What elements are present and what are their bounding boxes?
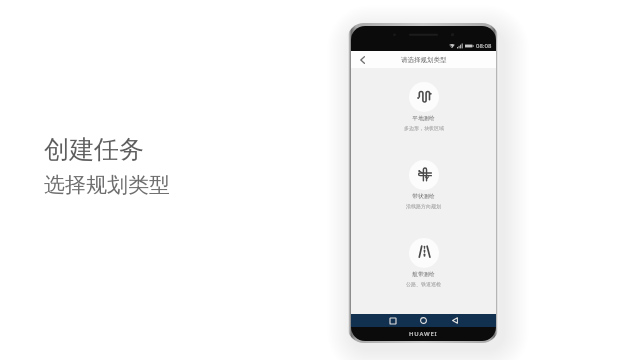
button[interactable]: 平地测绘 [376,82,471,131]
button[interactable]: 航带测绘 [376,238,471,287]
staticText: 航带测绘 [412,271,435,278]
staticText: 公路、铁道巡检 [406,281,441,287]
button[interactable]: Home [417,314,430,327]
staticText: 选择规划类型 [44,172,170,198]
staticText: HUAWEI [409,330,438,338]
staticText: 沿线路方向规划 [406,203,441,209]
staticText: 请选择规划类型 [401,56,447,64]
button[interactable]: 带状测绘 [376,160,471,209]
staticText: 带状测绘 [412,193,435,200]
staticText: 创建任务 [44,134,144,165]
button[interactable]: Back [448,314,461,327]
staticText: 08:08 [476,42,492,50]
staticText: 多边形，块状区域 [404,125,444,131]
button[interactable]: Back [354,51,371,68]
button[interactable]: Recent apps [386,314,399,327]
staticText: 平地测绘 [412,115,435,122]
